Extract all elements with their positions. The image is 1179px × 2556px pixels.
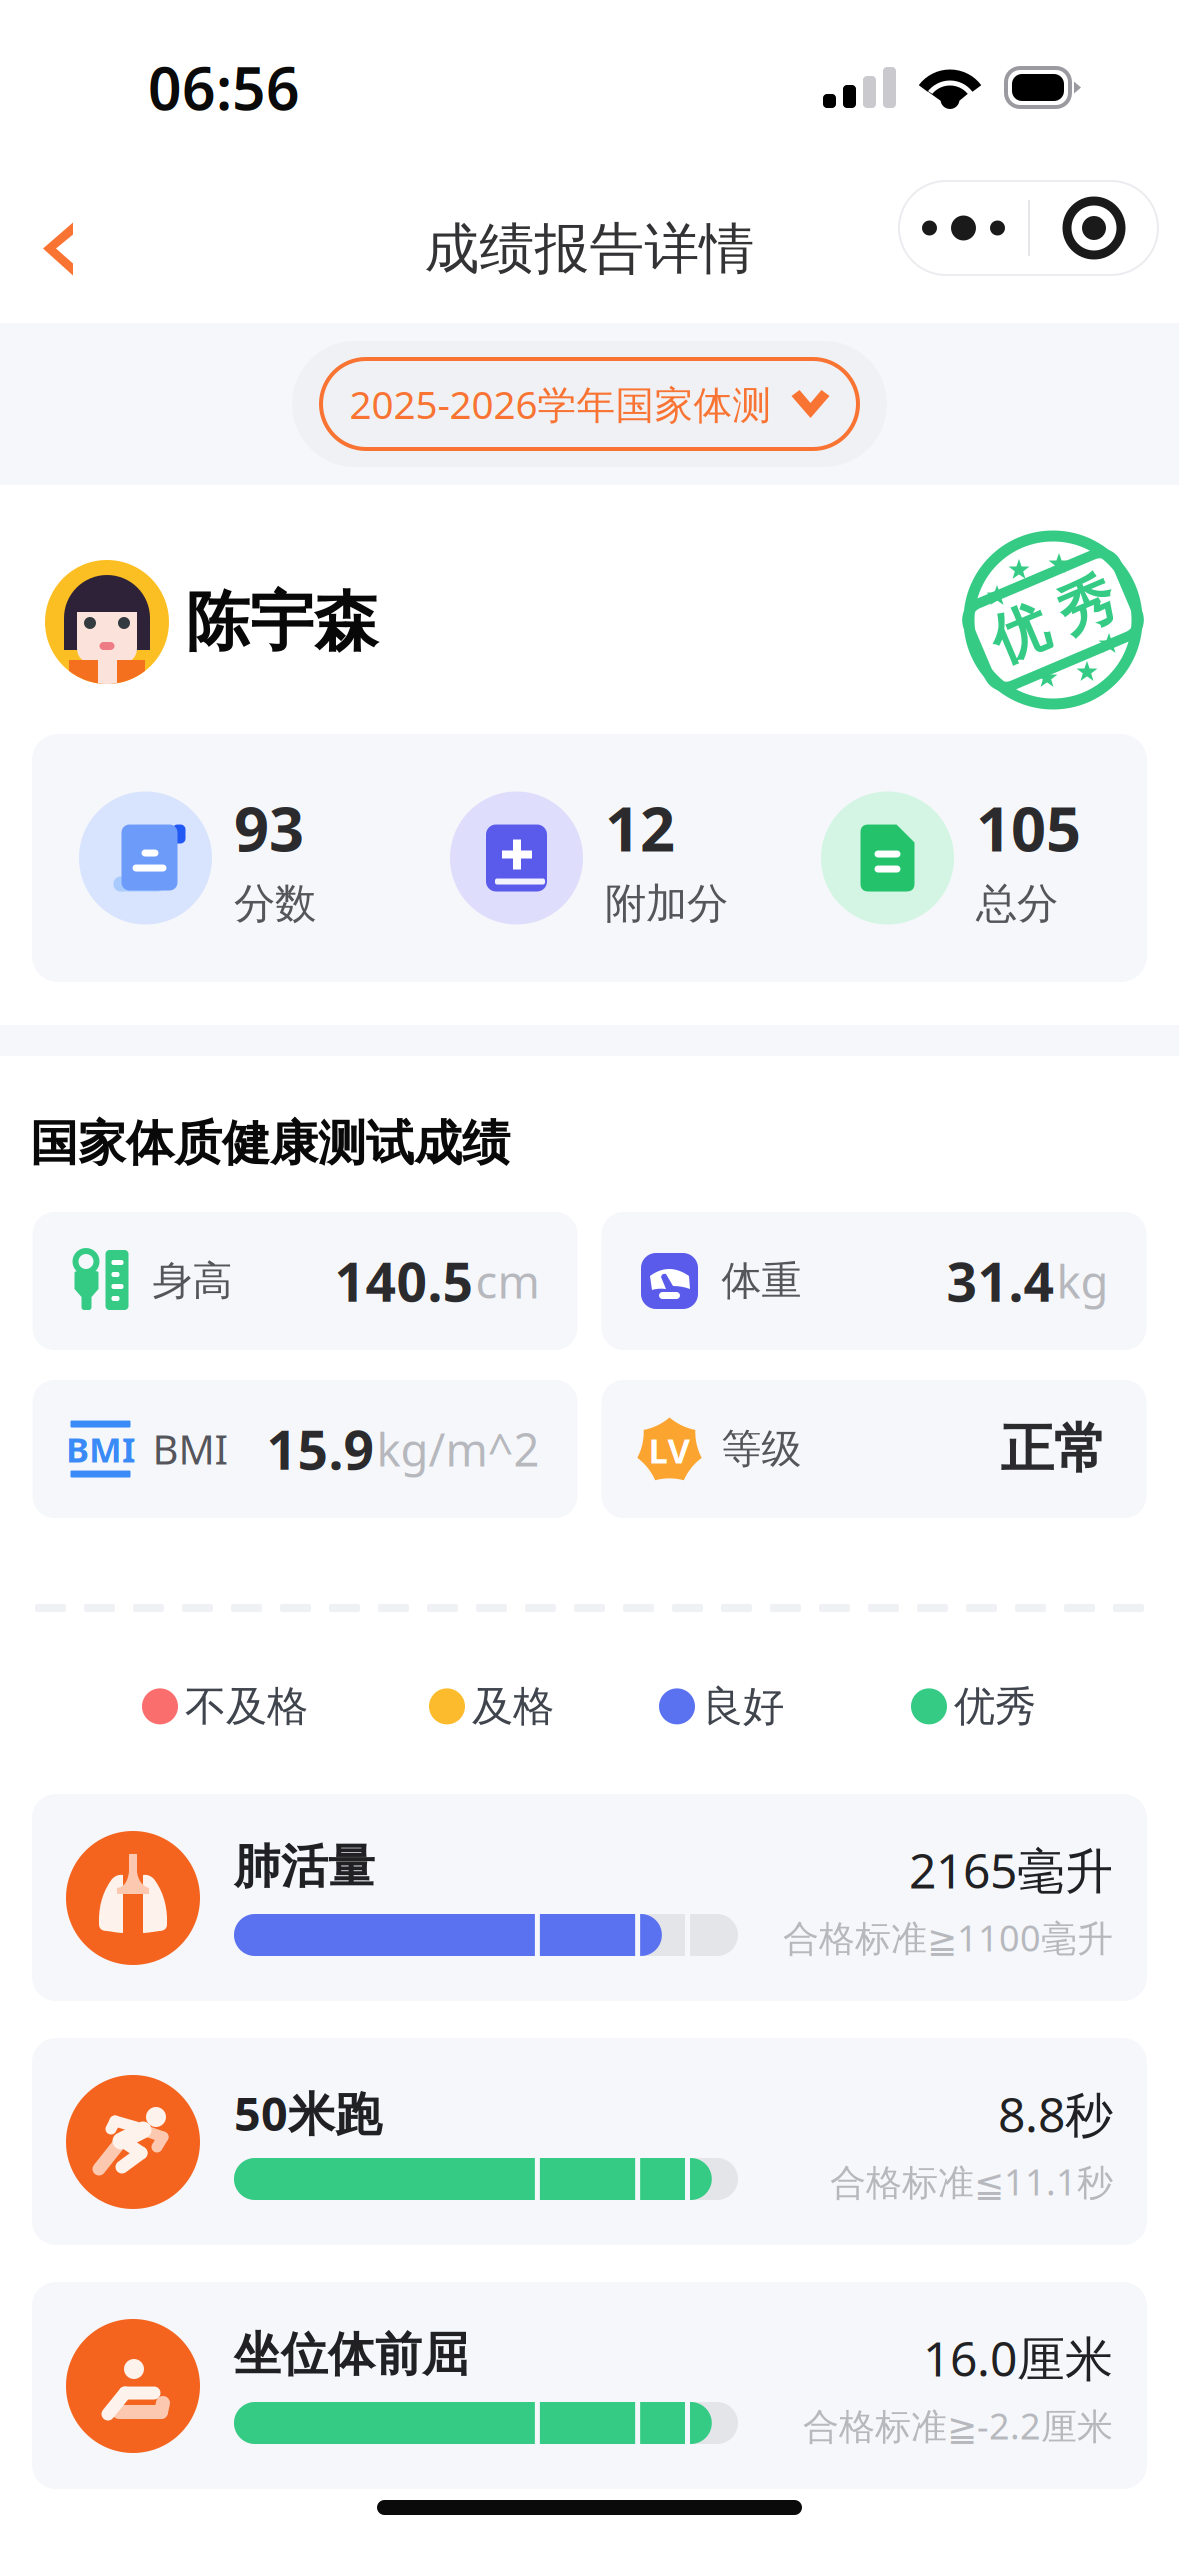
- staticText: 良好: [702, 1681, 784, 1732]
- staticText: 总分: [976, 878, 1058, 929]
- staticText: 国家体质健康测试成绩: [30, 1114, 510, 1173]
- staticText: 50米跑: [234, 2082, 382, 2144]
- staticText: 不及格: [185, 1681, 308, 1732]
- staticText: cm: [475, 1251, 539, 1311]
- staticText: BMI: [66, 1426, 135, 1472]
- staticText: LV: [648, 1427, 690, 1473]
- staticText: 等级: [721, 1424, 801, 1473]
- button[interactable]: More options: [899, 181, 1028, 275]
- staticText: 140.5: [334, 1246, 473, 1316]
- button[interactable]: Close mini program: [1030, 181, 1158, 275]
- button[interactable]: Back: [0, 175, 116, 323]
- button[interactable]: 2025-2026学年国家体测: [321, 359, 858, 449]
- staticText: 合格标准≧-2.2厘米: [803, 2402, 1113, 2449]
- staticText: 体重: [721, 1256, 801, 1305]
- staticText: 105: [976, 787, 1081, 868]
- staticText: kg/m^2: [376, 1419, 539, 1479]
- staticText: 附加分: [605, 878, 728, 929]
- staticText: BMI: [152, 1422, 228, 1475]
- staticText: 93: [234, 787, 304, 868]
- staticText: 成绩报告详情: [424, 215, 754, 282]
- staticText: 优秀: [954, 1681, 1036, 1732]
- staticText: 合格标准≦11.1秒: [830, 2158, 1113, 2205]
- staticText: 身高: [152, 1256, 232, 1305]
- staticText: 12: [605, 787, 675, 868]
- staticText: 正常: [1000, 1416, 1106, 1482]
- staticText: 肺活量: [234, 1838, 375, 1895]
- staticText: 8.8秒: [998, 2082, 1113, 2146]
- staticText: 2165毫升: [909, 1838, 1113, 1902]
- staticText: 陈宇森: [186, 583, 378, 662]
- staticText: 合格标准≧1100毫升: [783, 1914, 1113, 1961]
- staticText: 06:56: [148, 48, 300, 126]
- staticText: 2025-2026学年国家体测: [349, 378, 771, 430]
- staticText: 坐位体前屈: [234, 2326, 469, 2383]
- staticText: 15.9: [266, 1414, 374, 1484]
- staticText: 31.4: [946, 1246, 1054, 1316]
- staticText: 16.0厘米: [923, 2326, 1113, 2390]
- staticText: 优 秀: [988, 586, 1117, 654]
- staticText: 分数: [234, 878, 316, 929]
- staticText: kg: [1056, 1251, 1108, 1311]
- staticText: 及格: [472, 1681, 554, 1732]
